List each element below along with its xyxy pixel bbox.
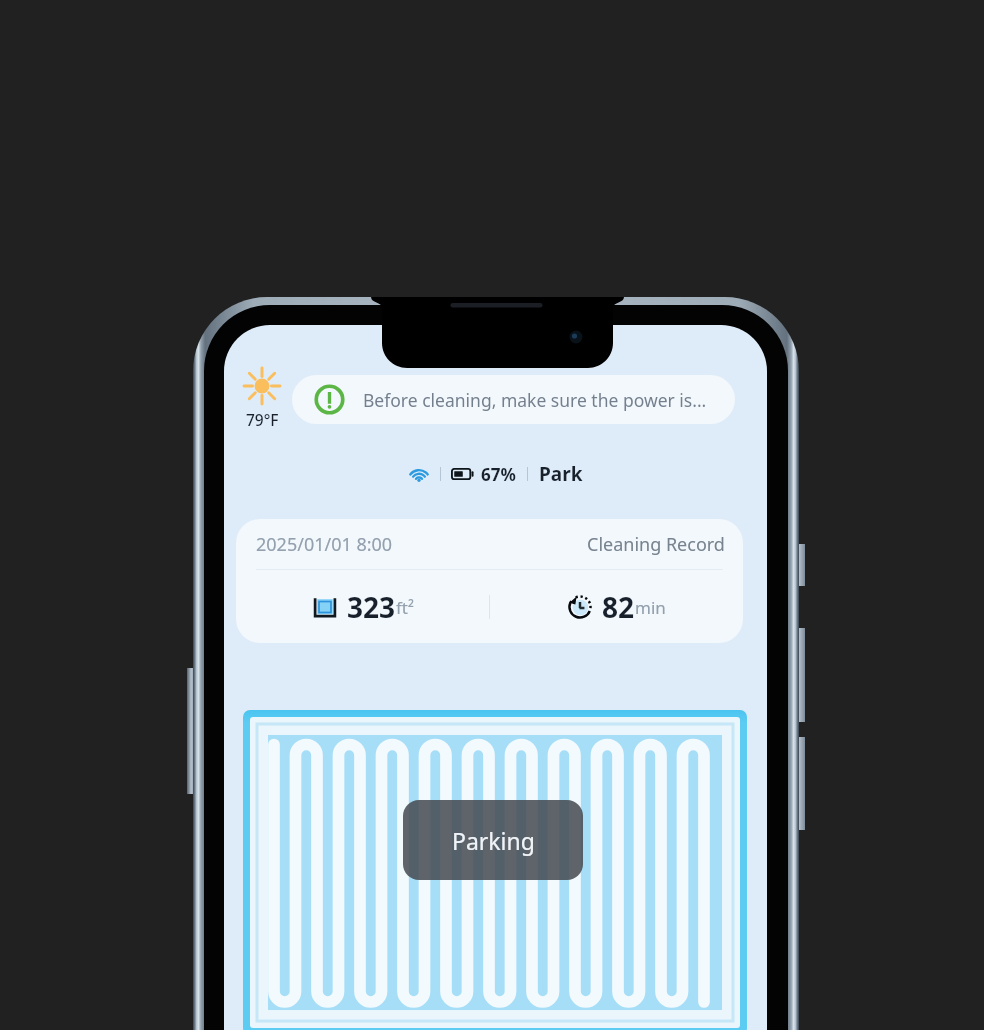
button[interactable]: Parking	[403, 800, 583, 880]
staticText: 2025/01/01 8:00	[256, 532, 393, 557]
staticText: Cleaning Record	[587, 532, 725, 557]
button[interactable]: Before cleaning, make sure the power is.…	[292, 375, 735, 424]
staticText: 323	[347, 588, 396, 626]
button[interactable]: 2025/01/01 8:00	[236, 519, 743, 643]
staticText: Before cleaning, make sure the power is.…	[363, 388, 707, 412]
staticText: Parking	[452, 825, 535, 856]
staticText: min	[635, 596, 666, 619]
staticText: 82	[602, 588, 635, 626]
staticText: 67%	[481, 463, 516, 486]
staticText: ft²	[396, 596, 414, 619]
button[interactable]: Weather	[234, 367, 290, 430]
staticText: 79°F	[246, 409, 279, 430]
staticText: Park	[539, 461, 583, 487]
